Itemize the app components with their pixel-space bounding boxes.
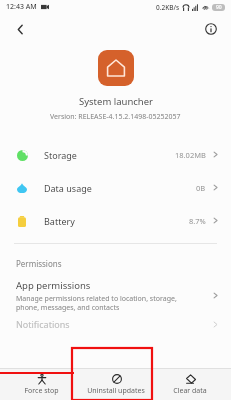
button[interactable]: Uninstall updates [83,371,149,398]
staticText: Manage permissions related to location, … [16,294,177,312]
button[interactable]: Storage [0,138,231,171]
staticText: System launcher [79,95,153,108]
staticText: 0B [196,183,206,193]
staticText: Uninstall updates [87,386,145,396]
staticText: Notifications [16,318,70,330]
button[interactable]: Battery [0,204,231,237]
staticText: Clear data [173,386,207,396]
button[interactable]: About [199,17,223,41]
staticText: Force stop [24,386,59,396]
button[interactable]: Data usage [0,171,231,204]
staticText: 18.02MB [175,150,206,160]
button[interactable]: App permissions [0,277,231,314]
staticText: 12:43 AM [6,2,37,12]
staticText: Version: RELEASE-4.15.2.1498-05252057 [50,112,181,122]
staticText: Battery [44,215,75,227]
staticText: App permissions [16,279,91,292]
staticText: Permissions [16,258,62,269]
button[interactable]: Clear data [169,371,211,398]
staticText: 90 [216,4,222,11]
staticText: Storage [44,149,77,161]
staticText: 0.2KB/s [156,3,180,12]
button[interactable]: Force stop [20,371,63,398]
staticText: Data usage [44,182,92,194]
button[interactable]: Notifications [0,318,231,330]
staticText: 8.7% [189,216,206,226]
button[interactable]: Back [8,17,32,41]
